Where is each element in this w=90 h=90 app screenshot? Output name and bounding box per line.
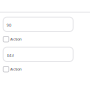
button[interactable]: 443 [3, 47, 73, 61]
staticText: Action [10, 66, 21, 72]
staticText: Action [10, 36, 21, 42]
button[interactable]: Action [3, 36, 73, 42]
staticText: 443 [6, 53, 13, 58]
button[interactable]: 90 [3, 17, 73, 31]
staticText: 90 [6, 23, 11, 28]
button[interactable]: Action [3, 66, 73, 72]
